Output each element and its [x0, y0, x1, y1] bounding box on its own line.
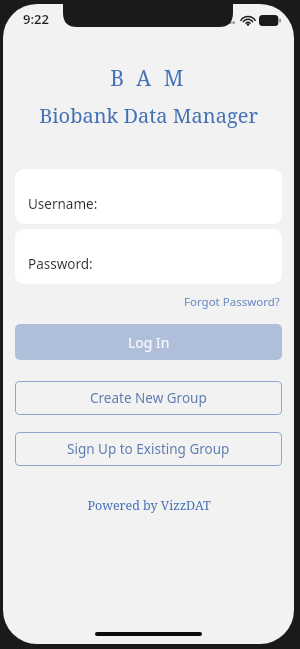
staticText: Forgot Password? [184, 294, 280, 310]
button[interactable]: Log In [15, 324, 282, 360]
staticText: 9:22 [23, 10, 49, 28]
staticText: Create New Group [90, 389, 207, 407]
staticText: Powered by VizzDAT [87, 497, 211, 514]
button[interactable]: Sign Up to Existing Group [15, 432, 282, 466]
button[interactable]: Create New Group [15, 381, 282, 415]
staticText: Biobank Data Manager [39, 102, 258, 129]
button[interactable]: Username: [15, 169, 282, 224]
staticText: Log In [128, 333, 170, 352]
staticText: Sign Up to Existing Group [67, 440, 230, 458]
staticText: B A M [110, 64, 187, 93]
staticText: Password: [28, 255, 93, 273]
button[interactable]: Password: [15, 229, 282, 284]
button[interactable]: Forgot Password? [182, 292, 282, 312]
staticText: Username: [28, 195, 98, 213]
